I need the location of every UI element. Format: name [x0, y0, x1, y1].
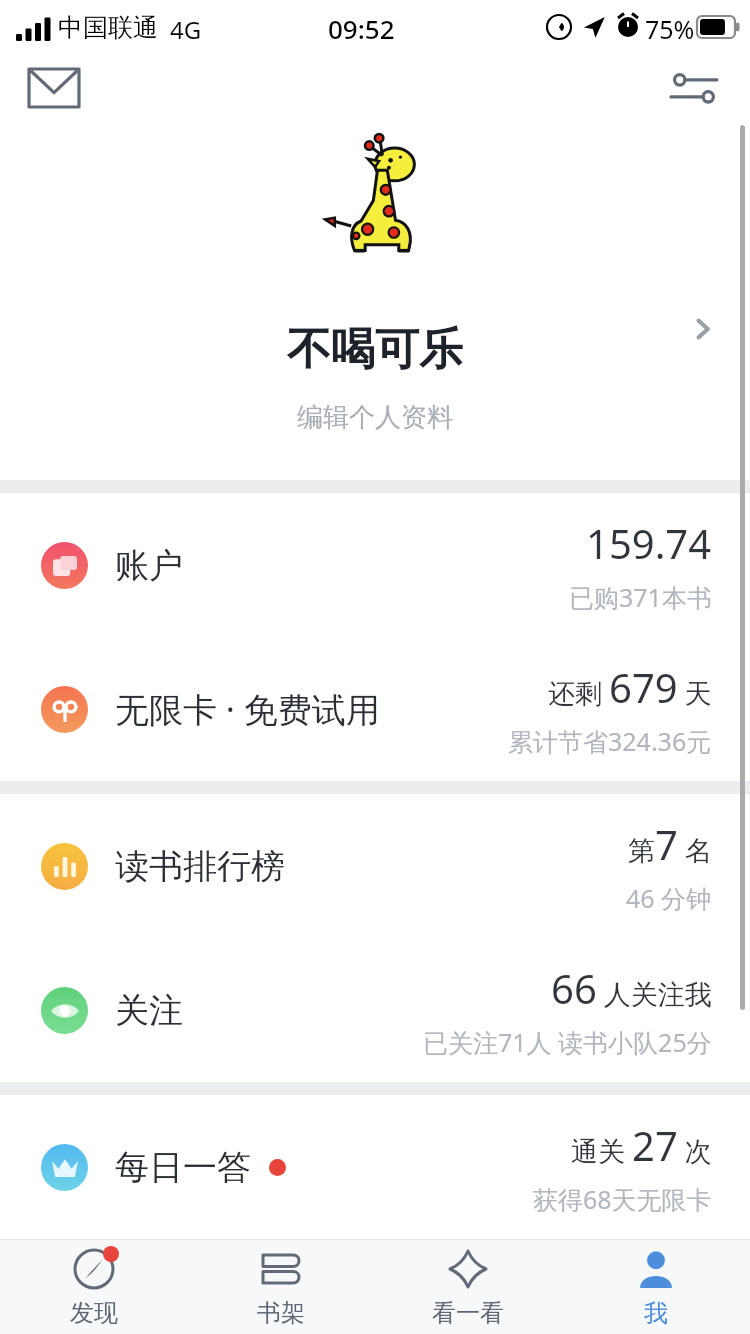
staticText: 通关 27 次	[571, 1118, 712, 1172]
button[interactable]: 关注	[0, 938, 750, 1082]
button[interactable]: 书架	[187, 1239, 374, 1334]
button[interactable]: 看一看	[374, 1239, 562, 1334]
staticText: 每日一答	[115, 1146, 251, 1189]
staticText: 还剩 679 天	[548, 660, 712, 714]
button[interactable]: 读书排行榜	[0, 794, 750, 938]
button[interactable]: 发现	[0, 1239, 187, 1334]
staticText: 发现	[70, 1298, 118, 1328]
staticText: 书架	[257, 1298, 305, 1328]
button[interactable]: Profile details	[678, 304, 728, 354]
staticText: 读书排行榜	[115, 845, 285, 888]
staticText: 编辑个人资料	[297, 401, 453, 434]
button[interactable]: Settings	[660, 62, 728, 114]
button[interactable]: 我	[562, 1239, 750, 1334]
staticText: 46 分钟	[626, 881, 712, 915]
button[interactable]: 无限卡 · 免费试用	[0, 637, 750, 781]
staticText: 75%	[645, 12, 695, 46]
staticText: 看一看	[432, 1298, 504, 1328]
staticText: 159.74	[586, 516, 712, 570]
staticText: 已购371本书	[569, 580, 712, 614]
staticText: 累计节省324.36元	[508, 724, 712, 758]
staticText: 获得68天无限卡	[533, 1182, 712, 1216]
staticText: 第7 名	[628, 817, 712, 871]
staticText: 不喝可乐	[287, 322, 463, 377]
button[interactable]: Messages	[22, 62, 86, 114]
staticText: 关注	[115, 989, 183, 1032]
staticText: 4G	[170, 13, 202, 46]
staticText: 09:52	[328, 11, 395, 46]
staticText: 66 人关注我	[551, 961, 712, 1015]
staticText: 账户	[115, 544, 183, 587]
button[interactable]: 不喝可乐	[0, 122, 750, 434]
staticText: 我	[644, 1298, 668, 1328]
staticText: 无限卡 · 免费试用	[115, 686, 380, 732]
button[interactable]: 账户	[0, 493, 750, 637]
staticText: 已关注71人 读书小队25分	[423, 1025, 712, 1059]
button[interactable]: 每日一答	[0, 1095, 750, 1239]
staticText: 中国联通	[58, 12, 158, 43]
